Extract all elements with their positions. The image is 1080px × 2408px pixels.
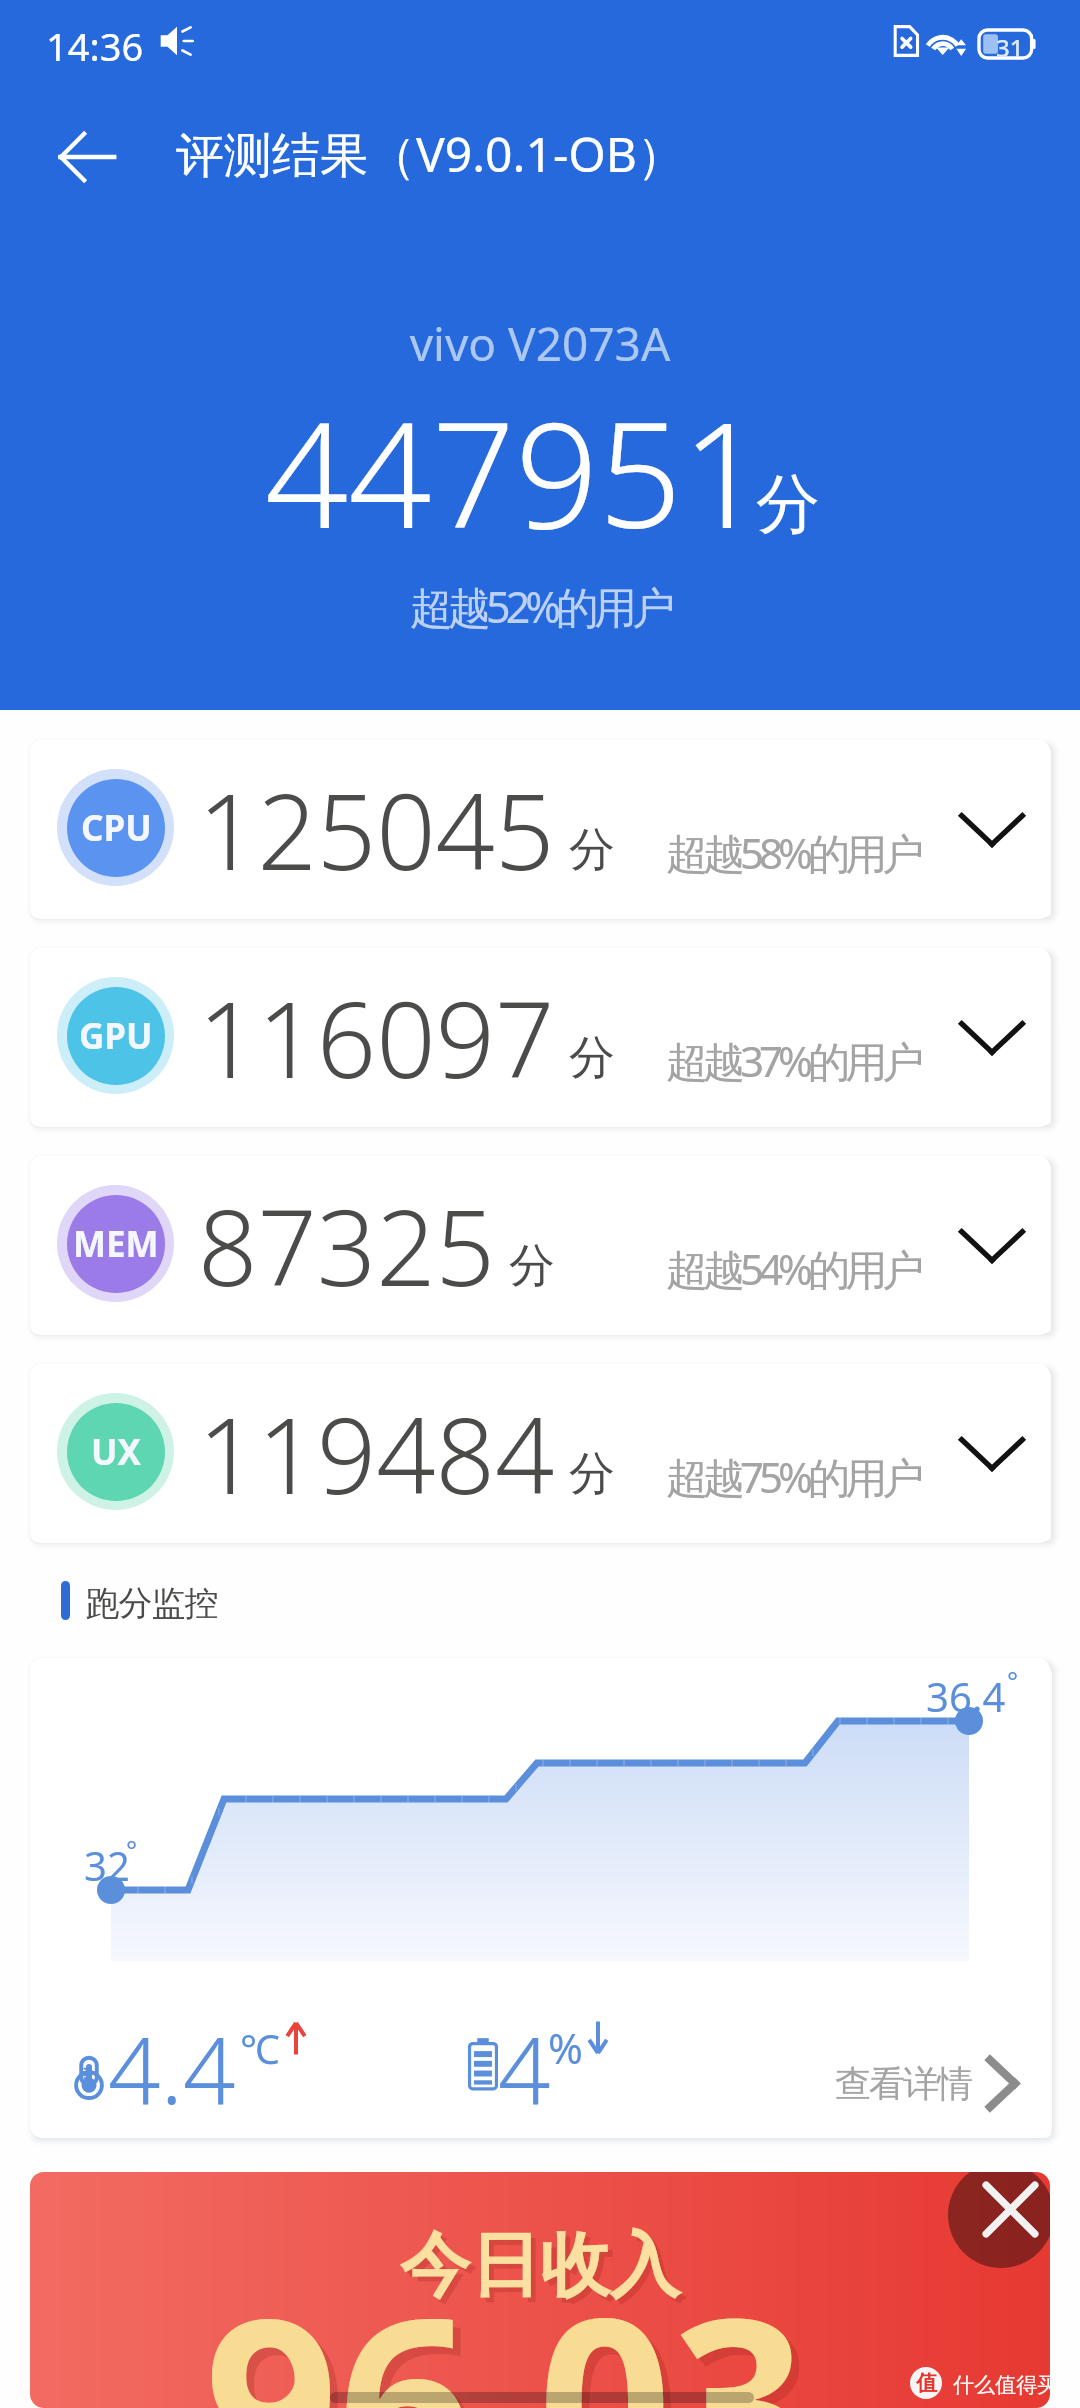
staticText: 分 [569, 1029, 615, 1087]
staticText: 32 [84, 1838, 130, 1892]
staticText: 分 [756, 464, 820, 545]
staticText: 96.03 [30, 2246, 1023, 2408]
button[interactable]: MEM [30, 1156, 1050, 1335]
staticText: % [548, 2019, 583, 2076]
button[interactable]: 查看详情 [836, 2033, 1019, 2133]
staticText: 119484 [198, 1383, 555, 1525]
staticText: CPU [81, 804, 152, 852]
staticText: 什么值得买 [953, 2372, 1050, 2398]
staticText: 查看详情 [836, 2061, 972, 2106]
staticText: ℃ [240, 2021, 280, 2075]
staticText: 超越52%的用户 [0, 577, 1080, 636]
staticText: 分 [509, 1237, 555, 1295]
staticText: 今日收入 [35, 2227, 1050, 2315]
staticText: 值 [916, 2370, 937, 2396]
button[interactable]: Close [30, 2172, 1050, 2408]
staticText: 31 [996, 31, 1024, 64]
staticText: ° [126, 1832, 138, 1867]
staticText: 125045 [198, 759, 555, 901]
staticText: 今日收入 [30, 2222, 1050, 2310]
staticText: 447951 [265, 372, 766, 571]
button[interactable]: GPU [30, 948, 1050, 1127]
staticText: 96.03 [30, 2238, 1015, 2408]
staticText: 跑分监控 [86, 1582, 218, 1625]
staticText: GPU [79, 1012, 153, 1060]
staticText: 36.4 [926, 1669, 1006, 1723]
staticText: 14:36 [46, 20, 144, 72]
button[interactable]: Back [41, 111, 133, 203]
staticText: 评测结果（V9.0.1-OB） [176, 121, 686, 187]
staticText: 分 [569, 821, 615, 879]
staticText: 超越75%的用户 [666, 1448, 919, 1505]
button[interactable]: UX [30, 1364, 1050, 1543]
staticText: ° [1007, 1663, 1019, 1698]
staticText: vivo V2073A [0, 312, 1080, 375]
staticText: 4 [498, 2006, 551, 2131]
button[interactable]: CPU [30, 740, 1050, 919]
staticText: 超越58%的用户 [666, 824, 919, 881]
staticText: MEM [73, 1220, 159, 1268]
staticText: UX [91, 1428, 141, 1476]
staticText: 4.4 [108, 2006, 236, 2131]
staticText: 超越37%的用户 [666, 1032, 919, 1089]
button[interactable]: Close [948, 2172, 1050, 2268]
staticText: 分 [569, 1445, 615, 1503]
staticText: 超越54%的用户 [666, 1240, 919, 1297]
staticText: 116097 [198, 967, 555, 1109]
staticText: 87325 [198, 1175, 495, 1317]
